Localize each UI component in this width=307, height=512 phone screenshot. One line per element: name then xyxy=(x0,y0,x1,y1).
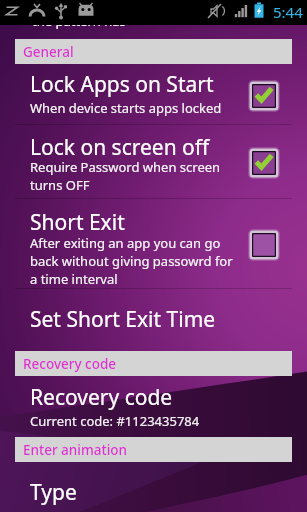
staticText: the pattern has xyxy=(32,12,126,30)
button[interactable] xyxy=(0,289,307,350)
staticText: Type xyxy=(30,478,77,507)
staticText: Recovery code xyxy=(30,383,173,412)
staticText: Current code: #1123435784 xyxy=(30,412,200,430)
staticText: Enter animation xyxy=(23,441,127,459)
staticText: Lock on screen off xyxy=(30,133,210,162)
button[interactable]: Checked xyxy=(248,80,280,112)
button[interactable] xyxy=(0,463,307,512)
staticText: After exiting an app you can go xyxy=(30,234,221,252)
staticText: Set Short Exit Time xyxy=(30,305,216,334)
button[interactable] xyxy=(0,199,307,288)
staticText: back without giving passowrd for xyxy=(30,252,233,270)
staticText: turns OFF xyxy=(30,176,90,194)
staticText: 5:44 xyxy=(273,2,303,22)
button[interactable] xyxy=(0,125,307,198)
button[interactable]: Unchecked xyxy=(248,229,280,261)
staticText: General xyxy=(23,43,74,61)
staticText: Recovery code xyxy=(23,355,117,373)
button[interactable]: Checked xyxy=(248,147,280,179)
staticText: Require Password when screen xyxy=(30,158,221,176)
staticText: Short Exit xyxy=(30,208,125,237)
staticText: a time interval xyxy=(30,270,118,288)
button[interactable] xyxy=(0,377,307,436)
button[interactable] xyxy=(0,63,307,124)
staticText: Lock Apps on Start xyxy=(30,70,214,99)
staticText: When device starts apps locked xyxy=(30,99,222,117)
